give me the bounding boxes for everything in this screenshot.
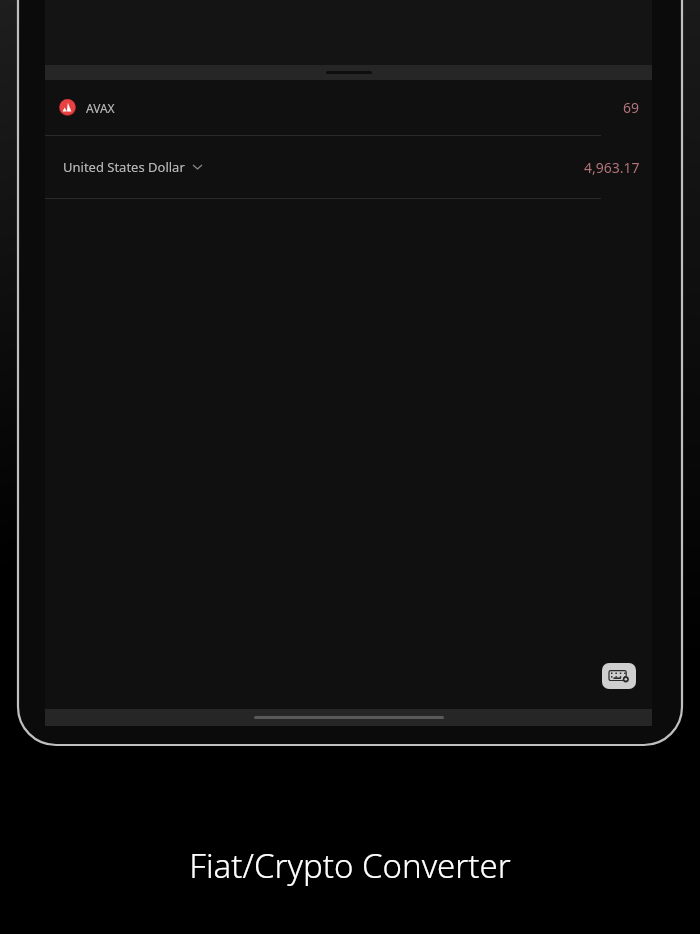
- staticText: AVAX: [86, 100, 115, 116]
- button[interactable]: United States Dollar: [45, 136, 652, 198]
- staticText: 4,963.17: [584, 158, 640, 177]
- button[interactable]: AVAX: [45, 80, 652, 135]
- staticText: Fiat/Crypto Converter: [189, 843, 511, 888]
- staticText: 69: [623, 98, 640, 117]
- staticText: United States Dollar: [63, 158, 185, 176]
- button[interactable]: Switch keyboard: [602, 663, 636, 689]
